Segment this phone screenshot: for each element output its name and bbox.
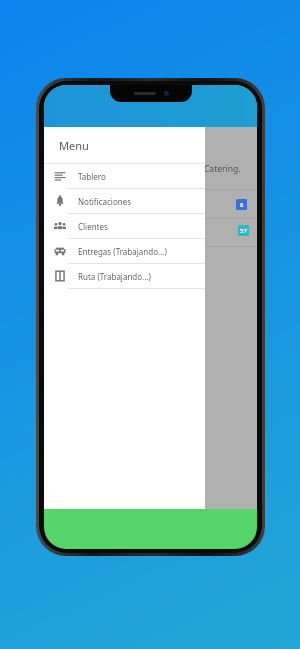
staticText: Catering. [204, 163, 241, 175]
staticText: Notificaciones [78, 196, 132, 207]
staticText: Tablero [78, 171, 106, 182]
button[interactable]: Notificaciones [44, 189, 205, 213]
button[interactable]: Tablero [44, 164, 205, 188]
staticText: 57 [240, 227, 247, 235]
button[interactable]: Clientes [44, 214, 205, 238]
staticText: Entregas (Trabajando...) [78, 246, 167, 257]
staticText: Ruta (Trabajando...) [78, 271, 151, 282]
staticText: 8 [240, 201, 244, 209]
staticText: Clientes [78, 221, 108, 232]
button[interactable]: Entregas (Trabajando...) [44, 239, 205, 263]
button[interactable]: Ruta (Trabajando...) [44, 264, 205, 288]
staticText: Menu [59, 138, 89, 153]
